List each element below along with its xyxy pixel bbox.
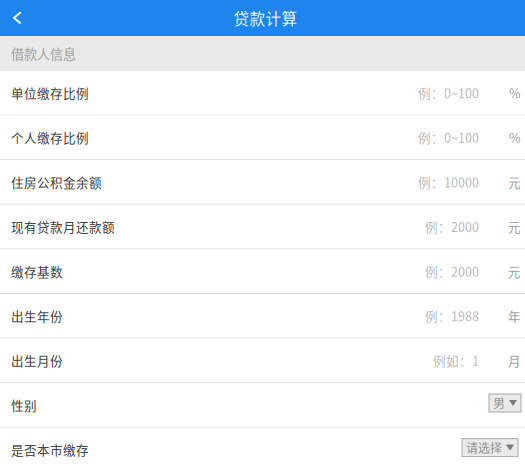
staticText: % xyxy=(509,128,521,146)
staticText: 例：2000 xyxy=(425,217,479,236)
button[interactable]: 是否本市缴存 xyxy=(0,428,525,464)
staticText: 性别 xyxy=(11,396,37,414)
staticText: 个人缴存比例 xyxy=(11,128,89,146)
staticText: 现有贷款月还款额 xyxy=(11,217,115,236)
staticText: 例：1988 xyxy=(425,307,479,325)
staticText: % xyxy=(509,84,521,102)
staticText: 单位缴存比例 xyxy=(11,84,89,102)
button[interactable]: 现有贷款月还款额 xyxy=(0,205,525,249)
staticText: 是否本市缴存 xyxy=(11,440,89,459)
staticText: 月 xyxy=(508,351,521,369)
staticText: 元 xyxy=(508,173,521,191)
staticText: 借款人信息 xyxy=(11,44,76,63)
staticText: 例：0~100 xyxy=(418,128,479,146)
staticText: 元 xyxy=(508,262,521,280)
staticText: 男 xyxy=(493,394,505,412)
staticText: 住房公积金余额 xyxy=(11,173,102,191)
staticText: 缴存基数 xyxy=(11,262,63,280)
staticText: 元 xyxy=(508,217,521,236)
staticText: 出生月份 xyxy=(11,351,63,369)
button[interactable]: 出生年份 xyxy=(0,294,525,339)
button[interactable]: Back xyxy=(0,0,36,36)
button[interactable]: 出生月份 xyxy=(0,339,525,383)
staticText: 请选择 xyxy=(466,439,502,456)
staticText: 年 xyxy=(508,307,521,325)
staticText: 例：2000 xyxy=(425,262,479,280)
staticText: 例：10000 xyxy=(418,173,479,191)
button[interactable]: 单位缴存比例 xyxy=(0,71,525,116)
staticText: 贷款计算 xyxy=(233,7,297,29)
button[interactable]: 住房公积金余额 xyxy=(0,160,525,205)
staticText: 出生年份 xyxy=(11,307,63,325)
button[interactable]: 个人缴存比例 xyxy=(0,116,525,160)
button[interactable]: 缴存基数 xyxy=(0,249,525,294)
staticText: 例：0~100 xyxy=(418,84,479,102)
button[interactable]: 性别 xyxy=(0,383,525,428)
staticText: 例如：1 xyxy=(433,351,479,369)
